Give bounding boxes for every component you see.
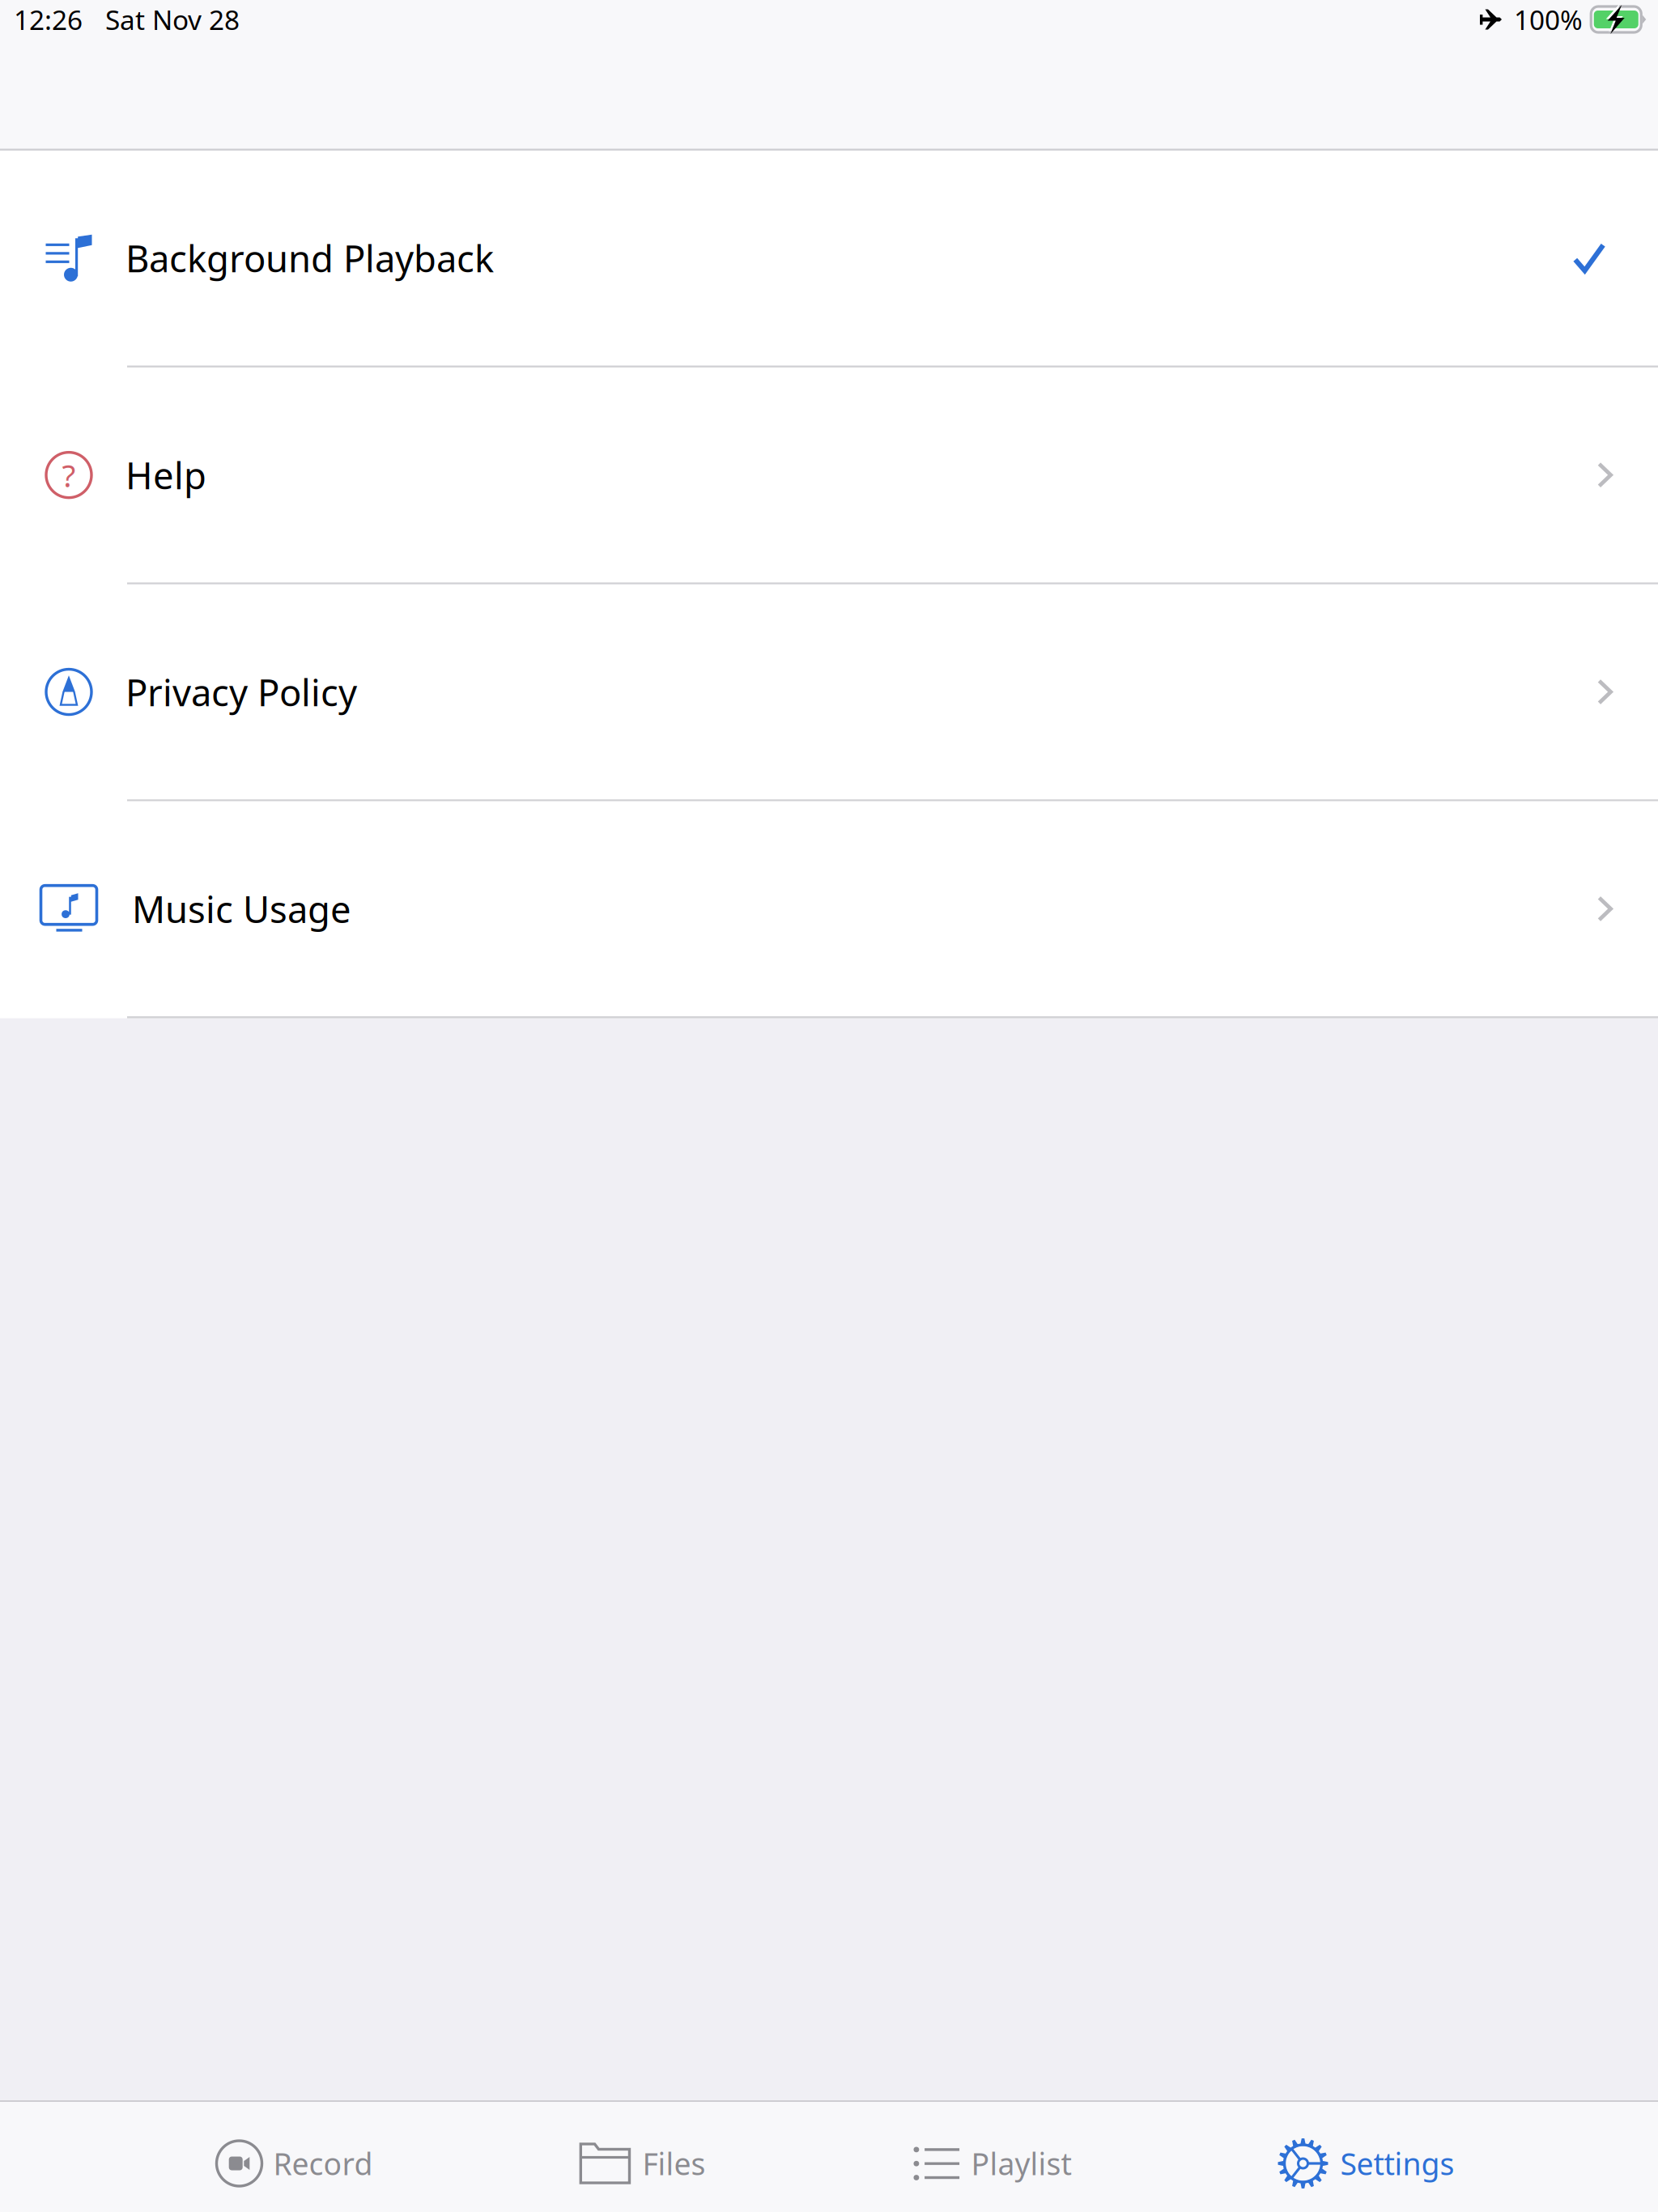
button[interactable]: Settings <box>1277 2114 1454 2212</box>
staticText: ? <box>62 454 76 496</box>
button[interactable]: Music Usage <box>0 801 1658 1016</box>
button[interactable]: Privacy Policy <box>0 584 1658 799</box>
staticText: Files <box>642 2143 706 2183</box>
button[interactable]: ? <box>0 368 1658 582</box>
staticText: Music Usage <box>132 884 351 933</box>
button[interactable]: Files <box>579 2114 706 2212</box>
staticText: 12:26 <box>14 2 83 37</box>
staticText: Help <box>125 451 206 499</box>
button[interactable]: Record <box>217 2114 373 2212</box>
button[interactable]: Playlist <box>914 2114 1071 2212</box>
staticText: Settings <box>1340 2143 1454 2183</box>
staticText: 100% <box>1514 2 1583 37</box>
button[interactable]: Background Playback <box>0 151 1658 366</box>
staticText: Record <box>273 2143 373 2183</box>
staticText: Background Playback <box>125 234 494 282</box>
staticText: Sat Nov 28 <box>105 2 240 37</box>
staticText: Privacy Policy <box>125 667 357 716</box>
staticText: Playlist <box>971 2143 1071 2183</box>
